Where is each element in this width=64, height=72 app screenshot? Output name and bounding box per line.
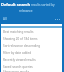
button[interactable]: Show more results xyxy=(1,70,62,72)
button[interactable]: Filter by date added xyxy=(1,49,62,56)
button[interactable]: Showing 20 of 184 items xyxy=(1,35,62,42)
staticText: Best matching results xyxy=(3,30,34,34)
staticText: All xyxy=(3,17,7,21)
staticText: relevance xyxy=(19,9,33,13)
button[interactable]: More options xyxy=(55,19,60,20)
staticText: Show more results xyxy=(3,70,30,72)
staticText: results sorted by xyxy=(31,3,55,7)
button[interactable]: Best matching results xyxy=(1,28,62,35)
staticText: Default search xyxy=(1,2,30,7)
button[interactable]: Saved search queries xyxy=(1,63,62,70)
staticText: Filter by date added xyxy=(3,51,31,55)
staticText: Showing 20 of 184 items xyxy=(3,37,38,41)
staticText: Saved search queries xyxy=(3,65,33,69)
staticText: Sort relevance descending xyxy=(3,44,41,48)
staticText: Recently viewed results xyxy=(3,58,36,62)
button[interactable]: Recently viewed results xyxy=(1,56,62,63)
button[interactable]: All filter xyxy=(3,17,7,21)
button[interactable]: Sort relevance descending xyxy=(1,42,62,49)
